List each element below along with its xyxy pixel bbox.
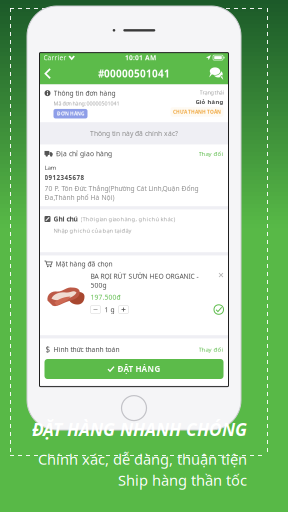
button[interactable]: Thay đổi <box>198 149 223 158</box>
button[interactable]: ĐẶT HÀNG <box>44 359 223 379</box>
staticText: 1 g <box>104 305 114 314</box>
button[interactable]: Messages <box>205 63 223 85</box>
staticText: Thay đổi <box>198 149 223 158</box>
staticText: $ <box>45 344 50 355</box>
staticText: Lam <box>44 163 56 171</box>
staticText: Mặt hàng đã chọn <box>55 259 112 269</box>
staticText: Trạng thái <box>199 89 223 96</box>
staticText: 10:01 AM <box>125 53 156 62</box>
button[interactable]: Thay đổi <box>198 345 223 354</box>
staticText: Địa chỉ giao hàng <box>56 149 112 158</box>
staticText: Nhập ghi chú của bạn tại đây <box>53 227 131 234</box>
staticText: Carrier <box>43 53 66 62</box>
staticText: Thông tin này đã chính xác? <box>90 129 178 138</box>
staticText: Thông tin đơn hàng <box>53 89 115 98</box>
button[interactable]: Thông tin này đã chính xác? <box>39 122 228 144</box>
staticText: BA RỌI RÚT SƯỜN HEO ORGANIC - 500g <box>90 272 198 290</box>
staticText: Giỏ hàng <box>195 98 223 106</box>
button[interactable]: Increase quantity <box>118 306 128 314</box>
button[interactable]: Remove item <box>218 272 223 278</box>
staticText: 0912345678 <box>44 173 84 182</box>
staticText: Mã đơn hàng: 00000501041 <box>53 100 119 107</box>
staticText: 197.500đ <box>90 293 120 302</box>
staticText: Ship hàng thần tốc <box>118 470 247 490</box>
staticText: Hình thức thanh toán <box>53 345 119 354</box>
staticText: CHƯA THANH TOÁN <box>173 109 221 115</box>
staticText: #00000501041 <box>98 67 170 80</box>
button[interactable]: Back <box>44 63 62 85</box>
staticText: ĐẶT HÀNG <box>117 364 160 374</box>
staticText: 70 P. Tôn Đức Thắng(Phường Cát Linh,Quận… <box>44 184 198 202</box>
staticText: Thay đổi <box>198 345 223 354</box>
staticText: Ghi chú <box>53 214 77 224</box>
button[interactable]: Decrease quantity <box>90 306 100 314</box>
staticText: Chính xác, dễ dàng, thuận tiện <box>38 449 247 469</box>
staticText: (Thời gian giao hàng, ghi chú khác) <box>80 215 175 223</box>
staticText: ĐƠN HÀNG <box>57 110 84 117</box>
staticText: ĐẶT HÀNG NHANH CHÓNG <box>32 417 247 441</box>
